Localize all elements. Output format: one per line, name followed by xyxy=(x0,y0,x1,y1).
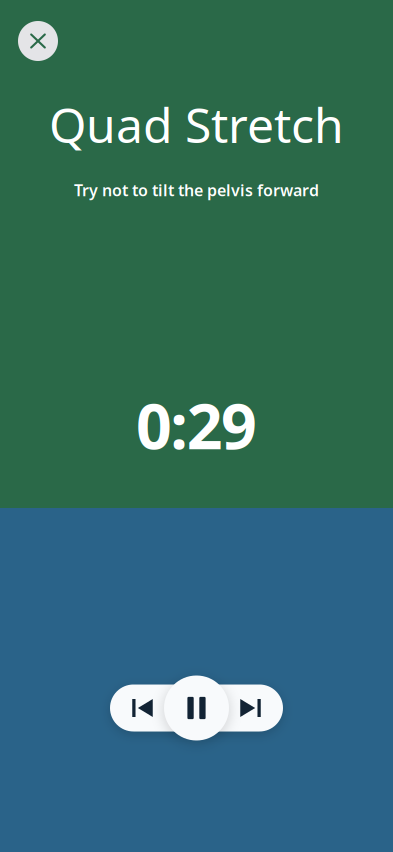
button[interactable]: Next exercise xyxy=(218,684,283,731)
button[interactable]: Pause xyxy=(164,675,229,740)
staticText: Try not to tilt the pelvis forward xyxy=(74,179,319,201)
staticText: Quad Stretch xyxy=(49,93,344,156)
staticText: 0:29 xyxy=(136,383,257,467)
button[interactable]: Previous exercise xyxy=(110,684,175,731)
button[interactable]: Close xyxy=(18,21,58,61)
